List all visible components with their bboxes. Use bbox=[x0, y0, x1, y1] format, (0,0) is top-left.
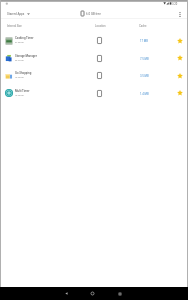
button[interactable]: Recents bbox=[113, 287, 126, 300]
staticText: 6.0 GB free bbox=[86, 12, 101, 16]
button[interactable]: Go Shopping bbox=[0, 67, 188, 84]
button[interactable]: Starred Apps bbox=[0, 9, 34, 19]
staticText: Go Shopping bbox=[15, 71, 32, 74]
button[interactable]: More options bbox=[174, 8, 186, 20]
staticText: Starred Apps bbox=[7, 12, 25, 16]
staticText: Cooking Timer bbox=[15, 36, 34, 39]
staticText: 3.5 MB bbox=[140, 74, 149, 77]
staticText: 10.20 MB bbox=[15, 94, 24, 96]
button[interactable]: Back bbox=[60, 287, 73, 300]
button[interactable]: Multi Timer bbox=[0, 84, 188, 102]
staticText: 3:20 bbox=[172, 2, 178, 5]
button[interactable]: Favorite bbox=[174, 70, 186, 82]
staticText: Multi Timer bbox=[15, 89, 30, 92]
staticText: Internal Size bbox=[7, 24, 22, 27]
staticText: Location bbox=[95, 24, 106, 27]
staticText: 17 MB bbox=[140, 39, 149, 42]
staticText: 1.4 MB bbox=[140, 92, 149, 95]
button[interactable]: Storage Manager bbox=[0, 49, 188, 67]
staticText: 7.5 MB bbox=[140, 57, 149, 60]
button[interactable]: Cooking Timer bbox=[0, 32, 188, 49]
staticText: 13.22 MB bbox=[15, 76, 24, 78]
staticText: 23.47 MB bbox=[15, 59, 24, 61]
staticText: Cache bbox=[139, 24, 147, 27]
button[interactable]: Favorite bbox=[174, 87, 186, 99]
staticText: 37.50 MB bbox=[15, 41, 24, 43]
button[interactable]: Favorite bbox=[174, 52, 186, 64]
button[interactable]: Home bbox=[86, 287, 99, 300]
button[interactable]: Favorite bbox=[174, 35, 186, 47]
staticText: Storage Manager bbox=[15, 54, 37, 57]
